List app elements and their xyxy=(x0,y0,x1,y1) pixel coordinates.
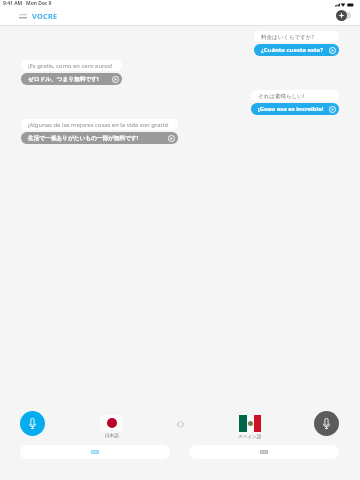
button[interactable]: Record Japanese xyxy=(20,411,45,436)
staticText: VOCRE xyxy=(32,11,58,21)
button[interactable]: Accessibility xyxy=(336,10,351,21)
staticText: スペイン語 xyxy=(238,434,262,440)
button[interactable]: ゼロドル、つまり無料です! xyxy=(21,73,122,85)
staticText: ¡Es gratis, como en cero euros! xyxy=(28,62,113,70)
button[interactable]: スペイン語 xyxy=(238,415,262,440)
button[interactable]: Keyboard input xyxy=(189,445,339,459)
staticText: ¡Guau eso es increíble! xyxy=(258,105,324,113)
staticText: ¿Cuánto cuesta esto? xyxy=(261,46,324,54)
button[interactable]: Menu xyxy=(17,10,29,22)
staticText: ゼロドル、つまり無料です! xyxy=(28,75,99,83)
button[interactable]: ¡Guau eso es increíble! xyxy=(251,103,339,115)
button[interactable]: Record Spanish xyxy=(314,411,339,436)
staticText: ¡Algunas de las mejores cosas en la vida… xyxy=(28,121,169,129)
staticText: 日本語 xyxy=(105,433,119,439)
button[interactable]: ¿Cuánto cuesta esto? xyxy=(254,44,339,56)
staticText: Mon Dec 9 xyxy=(26,0,52,7)
button[interactable]: 日本語 xyxy=(100,415,123,439)
staticText: それは素晴らしい! xyxy=(258,92,305,100)
staticText: 9:41 AM xyxy=(3,0,23,7)
button[interactable]: 生活で一番ありがたいもの一部が無料です! xyxy=(21,132,178,144)
staticText: 生活で一番ありがたいもの一部が無料です! xyxy=(28,134,139,142)
button[interactable]: Keyboard input xyxy=(20,445,170,459)
staticText: 料金はいくらですか? xyxy=(261,33,314,41)
button[interactable]: Swap languages xyxy=(172,416,188,432)
